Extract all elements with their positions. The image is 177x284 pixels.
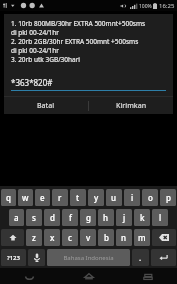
staticText: . [139,252,142,263]
button[interactable]: p [160,189,176,206]
staticText: Kirimkan [116,101,147,111]
staticText: q [6,192,11,203]
button[interactable]: c [62,229,78,246]
button[interactable]: t [70,189,86,206]
staticText: ?123 [7,254,20,262]
staticText: n [121,232,127,243]
staticText: z [32,232,36,243]
staticText: di pkl 00-24/1hr [11,28,60,37]
button[interactable]: Home [59,268,118,284]
staticText: p [166,192,171,203]
button[interactable]: e [35,189,50,206]
staticText: x [50,232,55,243]
button[interactable]: Recent apps [118,268,177,284]
staticText: c [68,232,72,243]
staticText: 100% [139,3,152,10]
button[interactable]: i [124,189,140,206]
staticText: 16:25 [159,2,175,10]
button[interactable]: d [44,209,60,226]
button[interactable]: s [26,209,42,226]
staticText: f [69,212,72,223]
button[interactable]: n [116,229,132,246]
button[interactable]: Shift [1,229,24,246]
button[interactable]: f [62,209,78,226]
staticText: j [123,212,126,223]
staticText: d [50,212,55,223]
button[interactable]: o [142,189,158,206]
staticText: s [32,212,36,223]
staticText: m [138,232,146,243]
button[interactable]: Bahasa Indonesia [47,249,130,266]
button[interactable]: w [18,189,33,206]
staticText: l [159,212,162,223]
button[interactable]: . [132,249,149,266]
staticText: h [103,212,109,223]
button[interactable]: Batal [4,97,88,114]
staticText: w [22,192,29,203]
button[interactable]: y [88,189,104,206]
staticText: t [76,192,80,203]
staticText: *363*820# [11,77,53,88]
staticText: di pkl 00-24/1hr [11,46,60,55]
button[interactable]: Voice input [28,249,45,266]
staticText: 2. 20rb 2GB/30hr EXTRA 500mnt +500sms [11,37,139,46]
staticText: u [111,192,117,203]
button[interactable]: Kirimkan [89,97,173,114]
button[interactable]: v [80,229,96,246]
staticText: k [140,212,145,223]
button[interactable]: k [134,209,150,226]
button[interactable]: b [98,229,114,246]
staticText: e [40,192,45,203]
staticText: a [14,212,19,223]
button[interactable]: a [9,209,24,226]
staticText: 1. 10rb 800MB/30hr EXTRA 500mnt+500sms [11,19,146,28]
staticText: i [131,192,134,203]
button[interactable]: m [134,229,150,246]
button[interactable]: x [44,229,60,246]
button[interactable]: r [52,189,68,206]
staticText: 3. 20rb utk 3GB/30hari [11,55,81,64]
button[interactable]: u [106,189,122,206]
button[interactable]: Backspace [152,229,176,246]
staticText: b [104,232,109,243]
button[interactable]: j [116,209,132,226]
button[interactable]: Enter [151,249,176,266]
button[interactable]: h [98,209,114,226]
staticText: v [86,232,91,243]
button[interactable]: q [1,189,16,206]
button[interactable]: z [26,229,42,246]
staticText: g [86,212,91,223]
staticText: y [94,192,99,203]
button[interactable]: ?123 [1,249,26,266]
staticText: o [148,192,153,203]
button[interactable]: l [152,209,168,226]
staticText: Batal [37,101,55,111]
button[interactable]: Back [0,268,59,284]
button[interactable]: g [80,209,96,226]
staticText: Bahasa Indonesia [63,254,114,262]
staticText: r [58,192,62,203]
